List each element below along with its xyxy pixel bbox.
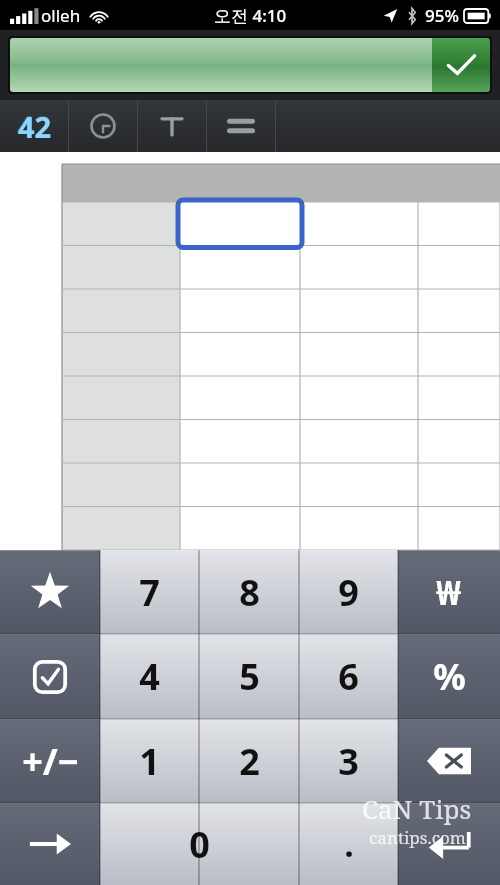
button[interactable]: Equals [207, 100, 275, 152]
button[interactable]: 6 [299, 634, 398, 719]
staticText: 42 [18, 107, 52, 146]
staticText: 5 [239, 652, 260, 701]
button[interactable]: 9 [299, 550, 398, 634]
button[interactable]: Time [69, 100, 137, 152]
staticText: cantips.com [369, 826, 466, 849]
button[interactable]: 4 [100, 634, 199, 719]
button[interactable]: Checkbox [0, 634, 100, 719]
button[interactable]: 3 [299, 719, 398, 803]
staticText: 7 [139, 568, 160, 617]
staticText: 오전 4:10 [214, 4, 287, 27]
staticText: CaN Tips [362, 791, 472, 826]
button[interactable]: 42 value [0, 100, 68, 152]
button[interactable]: 2 [199, 719, 299, 803]
button[interactable]: Favourite [0, 550, 100, 634]
button[interactable]: 0 [100, 803, 299, 885]
button[interactable]: % [398, 634, 500, 719]
staticText: . [344, 821, 354, 867]
staticText: +/− [22, 737, 79, 786]
button[interactable]: 1 [100, 719, 199, 803]
button[interactable]: Backspace [398, 719, 500, 803]
staticText: 95% [425, 4, 459, 27]
button[interactable]: Confirm [432, 38, 490, 92]
staticText: 42 [17, 106, 52, 147]
staticText: 1 [139, 737, 160, 786]
button[interactable]: 8 [199, 550, 299, 634]
button[interactable]: Next [0, 803, 100, 885]
staticText: ₩ [436, 569, 462, 615]
button[interactable] [10, 38, 432, 92]
staticText: 9 [338, 568, 359, 617]
staticText: 6 [338, 652, 359, 701]
staticText: 4 [139, 652, 160, 701]
button[interactable]: Enter [398, 803, 500, 885]
button[interactable]: 7 [100, 550, 199, 634]
staticText: % [433, 652, 466, 701]
button[interactable]: 5 [199, 634, 299, 719]
staticText: 3 [338, 737, 359, 786]
staticText: 8 [239, 568, 260, 617]
button[interactable]: Currency [398, 550, 500, 634]
staticText: 0 [189, 820, 210, 869]
staticText: olleh [41, 4, 81, 27]
button[interactable]: . [299, 803, 398, 885]
button[interactable]: +/− [0, 719, 100, 803]
staticText: 2 [239, 737, 260, 786]
button[interactable]: Text [138, 100, 206, 152]
